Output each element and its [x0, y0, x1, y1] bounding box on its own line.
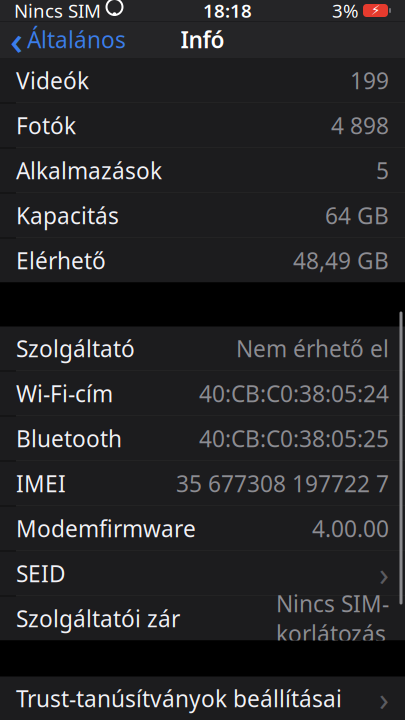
staticText: Elérhető [16, 245, 106, 275]
button[interactable]: SEID [0, 551, 405, 595]
staticText: ⚡︎ [371, 3, 380, 18]
staticText: 64 GB [325, 200, 389, 230]
staticText: 18:18 [203, 0, 252, 23]
staticText: 4 898 [331, 110, 389, 140]
button[interactable]: Szolgáltató [0, 326, 405, 370]
staticText: Infó [180, 24, 224, 54]
staticText: SEID [16, 558, 66, 588]
staticText: Trust-tanúsítványok beállításai [16, 683, 342, 713]
staticText: Szolgáltatói zár [16, 603, 180, 633]
staticText: Modemfirmware [16, 513, 196, 543]
button[interactable]: Bluetooth [0, 416, 405, 460]
button[interactable]: Kapacitás [0, 193, 405, 237]
staticText: 199 [350, 65, 389, 95]
staticText: Nincs SIM [14, 0, 101, 23]
button[interactable]: Fotók [0, 103, 405, 147]
staticText: › [379, 552, 389, 595]
staticText: 5 [376, 155, 389, 185]
button[interactable]: Modemfirmware [0, 506, 405, 550]
staticText: 48,49 GB [293, 245, 389, 275]
staticText: ‹ [10, 13, 23, 66]
staticText: Nem érhető el [236, 333, 389, 363]
staticText: 40:CB:C0:38:05:24 [199, 378, 389, 408]
button[interactable]: Alkalmazások [0, 148, 405, 192]
staticText: Szolgáltató [16, 333, 135, 363]
button[interactable]: Wi-Fi-cím [0, 371, 405, 415]
button[interactable]: Szolgáltatói zár [0, 596, 405, 640]
staticText: Videók [16, 65, 89, 95]
staticText: Wi-Fi-cím [16, 378, 113, 408]
staticText: IMEI [16, 468, 66, 498]
staticText: Fotók [16, 110, 76, 140]
staticText: 3% [332, 0, 359, 23]
staticText: Alkalmazások [16, 155, 162, 185]
staticText: 40:CB:C0:38:05:25 [199, 423, 389, 453]
staticText: Kapacitás [16, 200, 119, 230]
button[interactable]: Trust-tanúsítványok beállításai [0, 676, 405, 720]
staticText: Általános [27, 24, 126, 54]
staticText: › [379, 677, 389, 720]
staticText: 4.00.00 [312, 513, 389, 543]
staticText: Nincs SIM-korlátozás [276, 588, 389, 649]
button[interactable]: Elérhető [0, 238, 405, 282]
staticText: Bluetooth [16, 423, 122, 453]
staticText: 35 677308 197722 7 [176, 468, 389, 498]
button[interactable]: IMEI [0, 461, 405, 505]
button[interactable]: ‹ [0, 21, 136, 57]
button[interactable]: Videók [0, 58, 405, 102]
